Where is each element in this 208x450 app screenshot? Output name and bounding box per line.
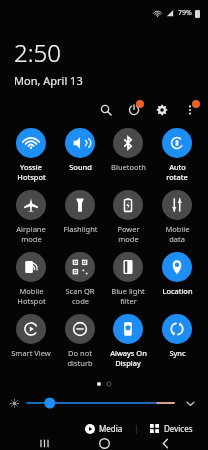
staticText: filter bbox=[120, 296, 137, 306]
button[interactable]: Sync bbox=[154, 314, 200, 358]
button[interactable]: Search bbox=[96, 100, 116, 120]
button[interactable]: Media bbox=[82, 420, 126, 437]
staticText: Auto bbox=[169, 162, 186, 172]
button[interactable]: Power bbox=[105, 190, 151, 244]
staticText: rotate bbox=[166, 172, 188, 182]
staticText: Hotspot bbox=[17, 296, 46, 306]
button[interactable]: Auto bbox=[154, 128, 200, 182]
staticText: 79% bbox=[178, 8, 192, 18]
button[interactable]: Sound bbox=[57, 128, 103, 172]
staticText: Sound bbox=[69, 162, 92, 172]
button[interactable]: Home bbox=[87, 437, 121, 450]
staticText: data bbox=[169, 234, 185, 244]
staticText: Power bbox=[117, 224, 140, 234]
staticText: Mon, April 13 bbox=[14, 73, 83, 88]
staticText: Blue light bbox=[111, 286, 145, 296]
staticText: Do not bbox=[68, 348, 92, 358]
staticText: 2:50 bbox=[14, 36, 61, 69]
staticText: code bbox=[72, 296, 89, 306]
button[interactable]: Mobile bbox=[8, 252, 54, 306]
button[interactable]: Do not bbox=[57, 314, 103, 368]
button[interactable]: Expand bbox=[182, 395, 198, 411]
staticText: Flashlight bbox=[63, 224, 98, 234]
button[interactable]: Location bbox=[154, 252, 200, 296]
button[interactable]: Bluetooth bbox=[105, 128, 151, 172]
button[interactable]: Mobile bbox=[154, 190, 200, 244]
staticText: Smart View bbox=[11, 348, 51, 358]
button[interactable]: Yossie bbox=[8, 128, 54, 182]
button[interactable]: Recents bbox=[27, 437, 61, 450]
staticText: Always On bbox=[110, 348, 147, 358]
staticText: Mobile bbox=[165, 224, 190, 234]
button[interactable]: Flashlight bbox=[57, 190, 103, 234]
staticText: Media bbox=[99, 423, 123, 434]
staticText: Airplane bbox=[16, 224, 46, 234]
button[interactable]: Back bbox=[148, 437, 182, 450]
button[interactable]: Scan QR bbox=[57, 252, 103, 306]
staticText: disturb bbox=[67, 358, 93, 368]
staticText: Mobile bbox=[19, 286, 44, 296]
staticText: Yossie bbox=[20, 162, 42, 172]
staticText: Sync bbox=[169, 348, 186, 358]
button[interactable]: Blue light bbox=[105, 252, 151, 306]
staticText: Display bbox=[115, 358, 141, 368]
staticText: Scan QR bbox=[65, 286, 95, 296]
staticText: | bbox=[134, 423, 139, 434]
staticText: Hotspot bbox=[17, 172, 46, 182]
button[interactable]: Brightness bbox=[27, 394, 174, 412]
button[interactable]: Settings bbox=[152, 100, 172, 120]
staticText: Devices bbox=[164, 423, 193, 434]
button[interactable]: Airplane bbox=[8, 190, 54, 244]
staticText: Location bbox=[162, 286, 193, 296]
button[interactable]: Smart View bbox=[8, 314, 54, 358]
staticText: Bluetooth bbox=[111, 162, 146, 172]
button[interactable]: Power off bbox=[124, 100, 144, 120]
staticText: mode bbox=[21, 234, 42, 244]
staticText: mode bbox=[118, 234, 139, 244]
button[interactable]: More options bbox=[180, 100, 200, 120]
button[interactable]: Always On bbox=[105, 314, 151, 368]
button[interactable]: Devices bbox=[147, 420, 196, 437]
